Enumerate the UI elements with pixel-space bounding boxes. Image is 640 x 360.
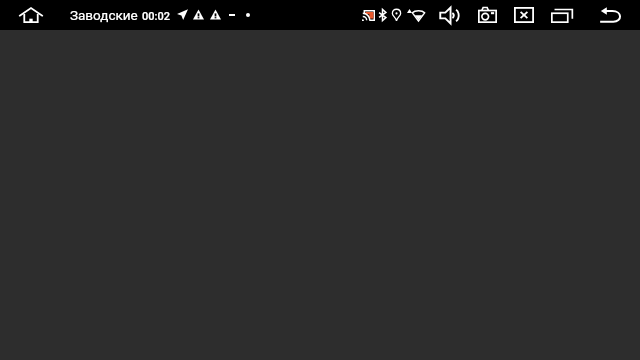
button[interactable]: Back xyxy=(588,0,632,30)
button[interactable]: Volume xyxy=(431,0,468,30)
button[interactable]: Screenshot xyxy=(468,0,506,30)
staticText: Заводские xyxy=(70,7,138,23)
button[interactable]: Заводские xyxy=(61,0,356,30)
button[interactable]: Close xyxy=(505,0,543,30)
staticText: 00:02 xyxy=(142,10,170,23)
button[interactable]: Home xyxy=(0,0,61,30)
button[interactable]: Recent apps xyxy=(541,0,583,30)
